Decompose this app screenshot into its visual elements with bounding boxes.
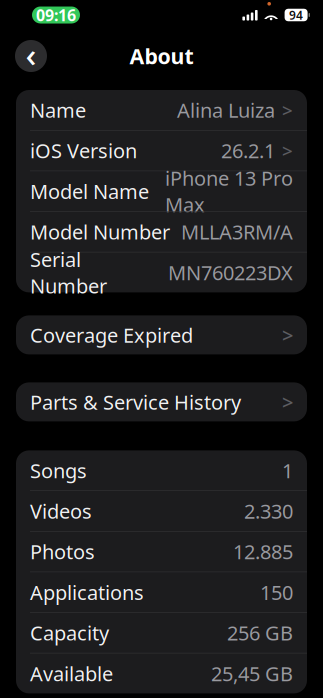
staticText: iPhone 13 Pro Max [165,165,293,218]
button[interactable]: Coverage Expired [16,315,307,354]
staticText: 256 GB [227,619,293,646]
staticText: Videos [30,498,92,524]
staticText: > [282,138,293,163]
button[interactable]: Parts & Service History [16,382,307,421]
staticText: > [282,322,293,348]
button[interactable]: Photos [16,532,307,572]
button[interactable]: iOS Version [16,131,307,171]
staticText: MN760223DX [168,259,293,286]
staticText: 09:16 [36,4,76,26]
staticText: Alina Luiza [177,97,275,123]
button[interactable]: Available [16,653,307,693]
staticText: Photos [30,538,95,565]
staticText: Songs [30,457,87,484]
staticText: 26.2.1 [221,137,275,164]
staticText: > [282,98,293,122]
staticText: Model Name [30,178,149,204]
staticText: Parts & Service History [30,389,241,415]
button[interactable]: Serial Number [16,252,307,292]
staticText: 25,45 GB [211,660,293,687]
staticText: 1 [282,457,293,484]
button[interactable]: Model Number [16,212,307,252]
staticText: Capacity [30,619,109,646]
staticText: 94 [289,7,303,23]
button[interactable]: Videos [16,491,307,531]
staticText: Model Number [30,218,170,245]
staticText: 12.885 [233,538,293,565]
staticText: About [129,42,193,70]
staticText: ‹ [25,32,36,76]
staticText: MLLA3RM/A [181,218,293,245]
staticText: Coverage Expired [30,322,193,348]
staticText: Available [30,660,113,687]
staticText: 2.330 [244,498,293,524]
button[interactable]: Songs [16,450,307,490]
button[interactable]: Applications [16,572,307,612]
staticText: Serial Number [30,246,107,299]
staticText: Name [30,97,86,123]
staticText: > [282,389,293,415]
button[interactable]: Capacity [16,613,307,653]
staticText: Applications [30,579,144,605]
staticText: 150 [260,579,293,605]
button[interactable]: Name [16,90,307,130]
staticText: iOS Version [30,137,137,164]
button[interactable]: Back [15,40,47,72]
button[interactable]: Model Name [16,171,307,211]
